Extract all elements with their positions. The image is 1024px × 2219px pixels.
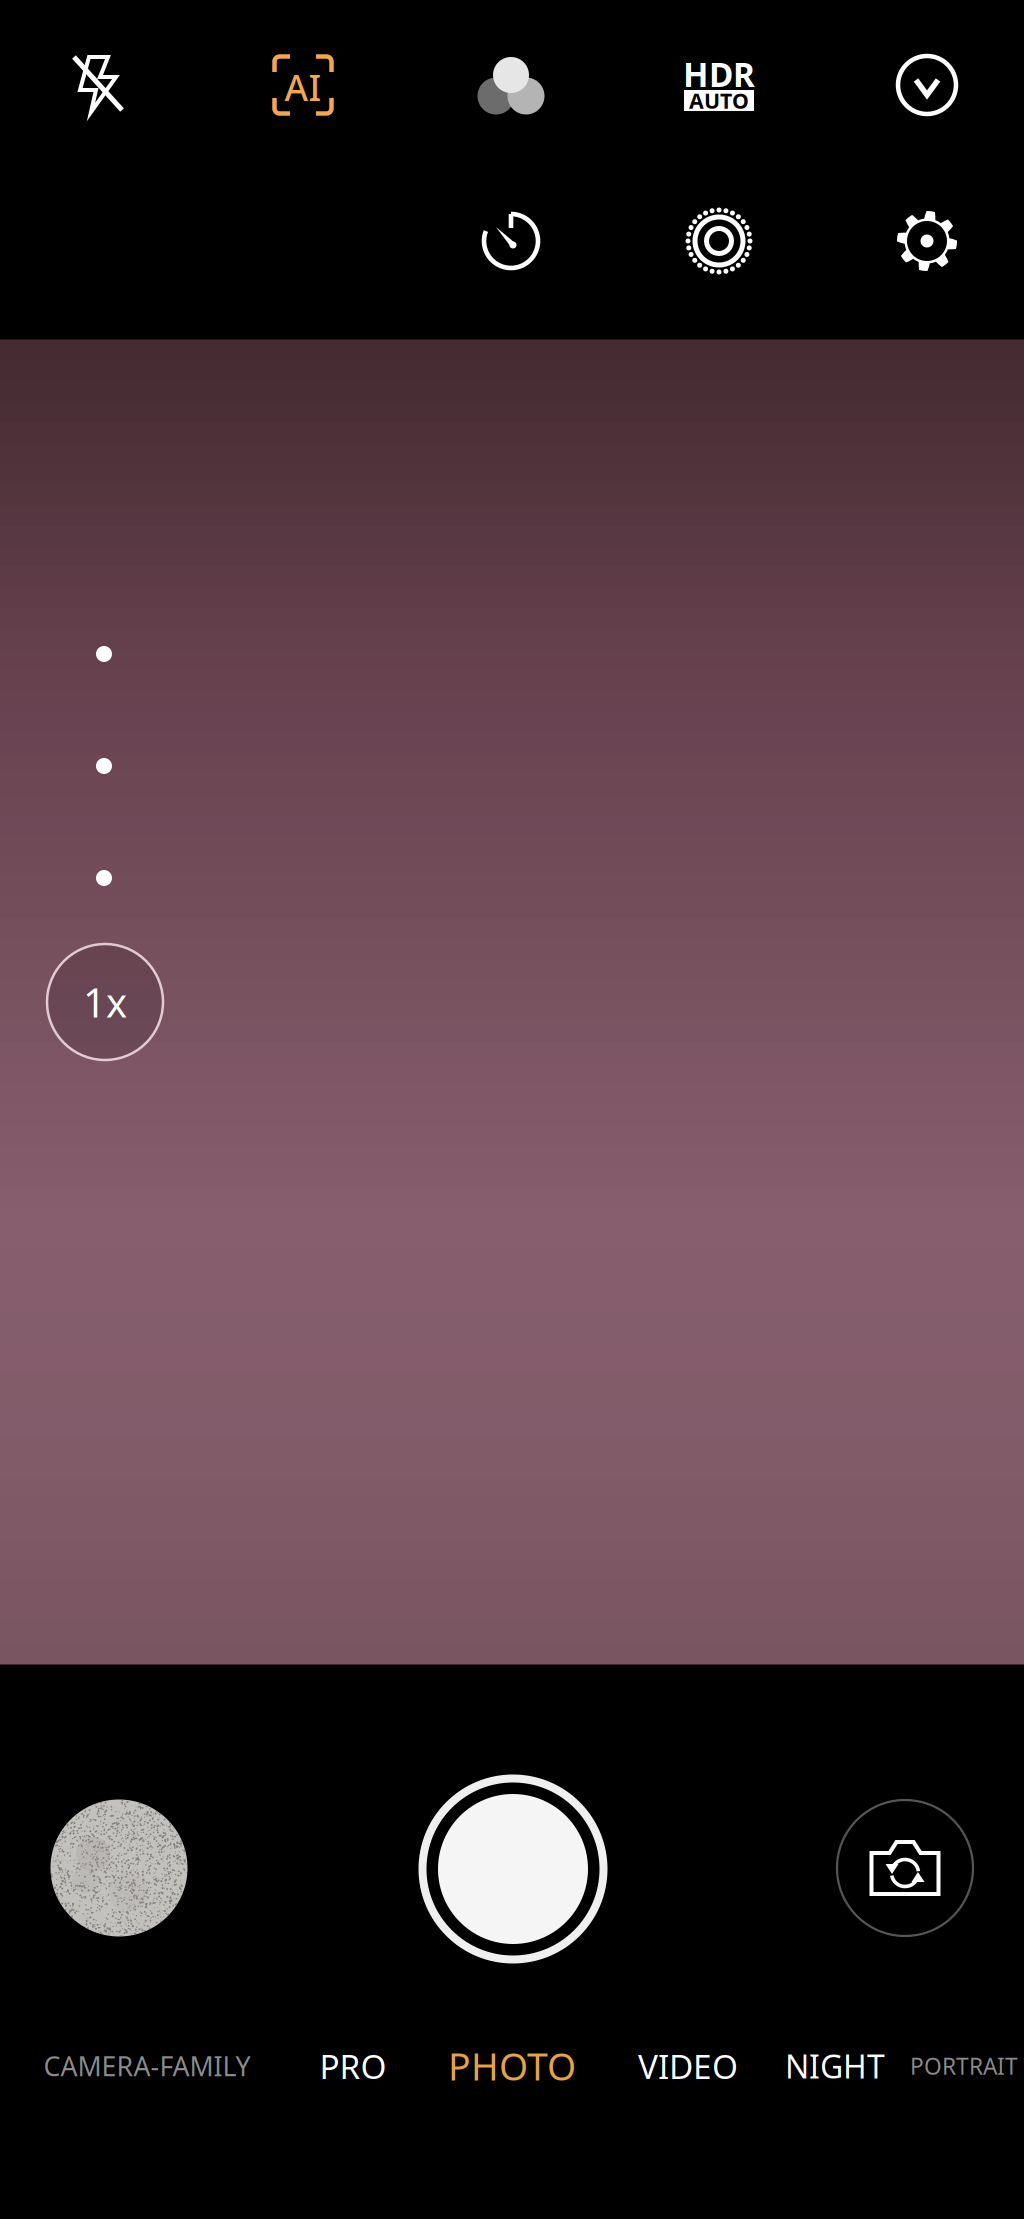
button[interactable]: Switch camera: [820, 1783, 990, 1953]
button[interactable]: PORTRAIT: [906, 2031, 1022, 2101]
button[interactable]: AI scene detection: [233, 31, 373, 139]
button[interactable]: HDR auto: [649, 31, 789, 139]
staticText: AI: [284, 63, 321, 111]
staticText: NIGHT: [785, 2045, 885, 2087]
button[interactable]: CAMERA-FAMILY: [32, 2031, 262, 2101]
button[interactable]: Zoom level 1x: [43, 940, 167, 1064]
button[interactable]: PRO: [303, 2031, 403, 2101]
button[interactable]: NIGHT: [780, 2031, 890, 2101]
staticText: AUTO: [689, 86, 749, 115]
button[interactable]: Colour filters: [441, 31, 581, 139]
button[interactable]: VIDEO: [625, 2031, 750, 2101]
staticText: VIDEO: [638, 2044, 738, 2088]
staticText: PHOTO: [448, 2041, 576, 2091]
button[interactable]: Take photo: [413, 1769, 613, 1969]
button[interactable]: Metering mode: [649, 187, 789, 295]
button[interactable]: Last photo: [29, 1778, 209, 1958]
button[interactable]: Settings: [857, 187, 997, 295]
staticText: HDR: [683, 52, 755, 96]
staticText: PORTRAIT: [910, 2051, 1018, 2081]
button[interactable]: More camera options: [857, 31, 997, 139]
button[interactable]: PHOTO: [437, 2031, 587, 2101]
staticText: CAMERA-FAMILY: [43, 2048, 250, 2084]
staticText: 1x: [83, 975, 127, 1028]
button[interactable]: Flash off: [28, 31, 168, 139]
staticText: PRO: [319, 2044, 386, 2088]
button[interactable]: Timer: [441, 187, 581, 295]
